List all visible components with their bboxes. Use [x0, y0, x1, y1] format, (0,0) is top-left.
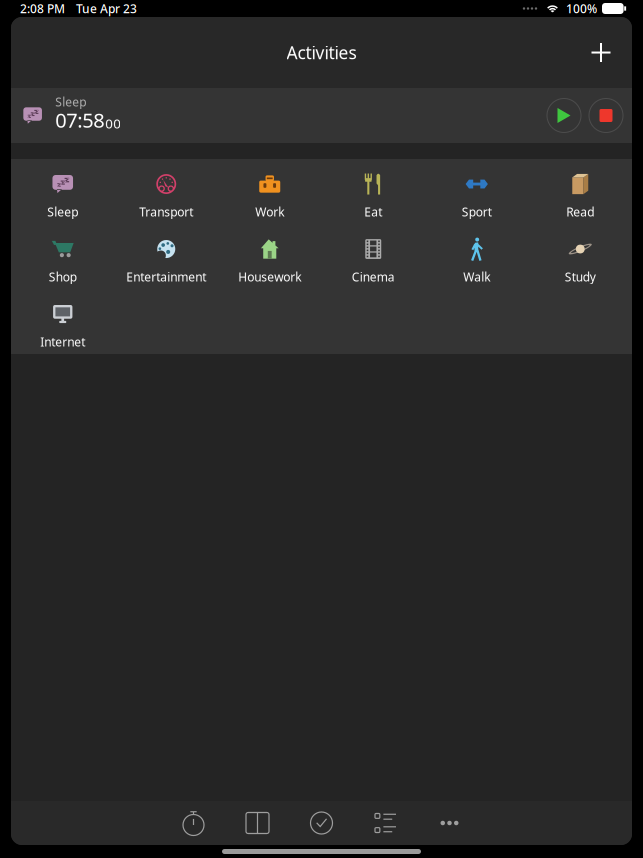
staticText: Transport: [139, 204, 193, 220]
button[interactable]: Entertainment: [114, 224, 218, 289]
button[interactable]: Journal: [225, 801, 289, 845]
button[interactable]: Start: [547, 98, 581, 132]
button[interactable]: Sleep: [11, 159, 114, 224]
button[interactable]: Work: [218, 159, 321, 224]
button[interactable]: Goals: [289, 801, 353, 845]
button[interactable]: Add activity: [577, 28, 625, 76]
button[interactable]: More: [417, 801, 481, 845]
button[interactable]: Stop: [589, 98, 623, 132]
button[interactable]: Cinema: [321, 224, 425, 289]
staticText: Cinema: [352, 269, 395, 285]
button[interactable]: Shop: [11, 224, 114, 289]
button[interactable]: Timer: [161, 801, 225, 845]
button[interactable]: Reports: [353, 801, 417, 845]
staticText: Study: [565, 269, 596, 285]
button[interactable]: Study: [528, 224, 632, 289]
staticText: Sport: [462, 204, 492, 220]
staticText: Sleep: [55, 94, 86, 110]
staticText: 07:58: [55, 107, 104, 133]
staticText: Activities: [286, 41, 356, 64]
button[interactable]: Housework: [218, 224, 321, 289]
staticText: Work: [255, 204, 284, 220]
button[interactable]: Transport: [114, 159, 218, 224]
button[interactable]: Read: [528, 159, 632, 224]
staticText: Tue Apr 23: [76, 0, 137, 16]
staticText: Eat: [364, 204, 382, 220]
button[interactable]: Walk: [425, 224, 528, 289]
staticText: 00: [105, 114, 121, 132]
staticText: Internet: [40, 334, 85, 350]
staticText: Housework: [238, 269, 301, 285]
staticText: Sleep: [47, 204, 78, 220]
button[interactable]: Internet: [11, 289, 114, 354]
staticText: Shop: [49, 269, 77, 285]
staticText: 100%: [566, 0, 597, 16]
staticText: Read: [566, 204, 594, 220]
staticText: 2:08 PM: [20, 0, 65, 16]
staticText: Entertainment: [126, 269, 206, 285]
button[interactable]: Eat: [321, 159, 425, 224]
button[interactable]: Sport: [425, 159, 528, 224]
staticText: Walk: [463, 269, 490, 285]
